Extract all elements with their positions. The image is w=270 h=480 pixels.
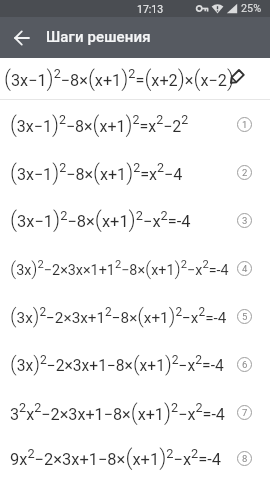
- button[interactable]: (3x−1)2−8×(x+1)2−x2=-4: [0, 196, 270, 244]
- staticText: (3x−1)2−8×(x+1)2−x2=-4: [10, 207, 191, 233]
- staticText: 2: [242, 167, 248, 178]
- button[interactable]: (3x−1)2−8×(x+1)2=(x+2)×(x−2): [0, 58, 270, 100]
- staticText: 8: [242, 453, 248, 464]
- button[interactable]: (3x)2−2×3x+12−8×(x+1)2−x2=-4: [0, 292, 270, 340]
- staticText: 32x2−2×3x+1−8×(x+1)2−x2=-4: [10, 400, 225, 425]
- staticText: Шаги решения: [46, 28, 151, 46]
- button[interactable]: (3x−1)2−8×(x+1)2=x2−22: [0, 100, 270, 148]
- staticText: 25%: [241, 2, 262, 15]
- button[interactable]: (3x)2−2×3x×1+12−8×(x+1)2−x2=-4: [0, 244, 270, 292]
- staticText: 17:13: [137, 3, 164, 15]
- staticText: 5: [242, 311, 248, 322]
- staticText: 9x2−2×3x+1−8×(x+1)2−x2=-4: [10, 445, 222, 471]
- staticText: (3x)2−2×3x+12−8×(x+1)2−x2=-4: [10, 304, 227, 328]
- button[interactable]: [0, 17, 44, 58]
- staticText: (3x−1)2−8×(x+1)2=x2−4: [10, 160, 183, 185]
- button[interactable]: (3x−1)2−8×(x+1)2=x2−4: [0, 148, 270, 196]
- button[interactable]: (3x)2−2×3x+1−8×(x+1)2−x2=-4: [0, 340, 270, 388]
- staticText: (3x)2−2×3x+1−8×(x+1)2−x2=-4: [10, 352, 224, 376]
- button[interactable]: 9x2−2×3x+1−8×(x+1)2−x2=-4: [0, 436, 270, 480]
- button[interactable]: 32x2−2×3x+1−8×(x+1)2−x2=-4: [0, 388, 270, 436]
- staticText: 3: [242, 215, 248, 226]
- staticText: 4: [242, 263, 248, 274]
- staticText: (3x−1)2−8×(x+1)2=x2−22: [10, 112, 189, 137]
- staticText: (3x−1)2−8×(x+1)2=(x+2)×(x−2): [4, 66, 235, 92]
- staticText: 7: [242, 407, 248, 418]
- staticText: (3x)2−2×3x×1+12−8×(x+1)2−x2=-4: [10, 257, 229, 280]
- staticText: 1: [242, 119, 248, 130]
- staticText: 6: [242, 359, 248, 370]
